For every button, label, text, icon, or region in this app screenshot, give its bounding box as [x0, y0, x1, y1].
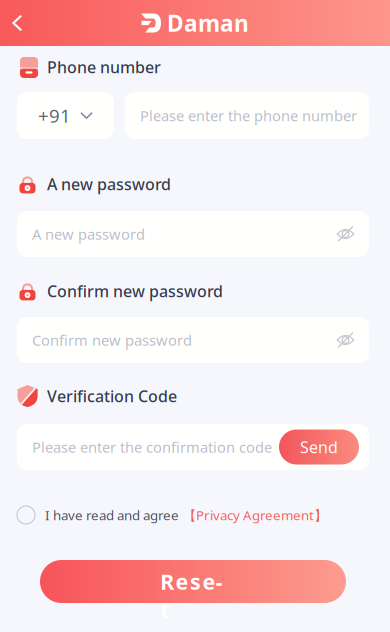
staticText: Daman	[167, 8, 249, 38]
staticText: Reset	[160, 567, 226, 596]
staticText: Please enter the phone number	[140, 106, 357, 125]
staticText: Please enter the confirmation code	[32, 437, 272, 457]
button[interactable]: Send	[279, 429, 359, 464]
button[interactable]: I have read and agree	[17, 504, 369, 526]
staticText: Send	[300, 436, 338, 458]
staticText: A new password	[32, 224, 145, 244]
button[interactable]: Reset	[40, 560, 346, 603]
button[interactable]: Please enter the phone number	[125, 92, 369, 139]
staticText: Confirm new password	[47, 280, 223, 302]
staticText: I have read and agree	[45, 506, 179, 524]
staticText: A new password	[47, 173, 171, 195]
button[interactable]: Back	[0, 0, 44, 46]
staticText: Verification Code	[47, 385, 177, 407]
staticText: 【Privacy Agreement】	[183, 506, 327, 524]
staticText: Confirm new password	[32, 330, 192, 350]
staticText: +91	[38, 103, 71, 128]
staticText: Phone number	[47, 56, 161, 78]
button[interactable]: Show password	[17, 211, 369, 257]
button[interactable]: +91	[17, 92, 114, 139]
button[interactable]: Show confirm password	[17, 317, 369, 363]
